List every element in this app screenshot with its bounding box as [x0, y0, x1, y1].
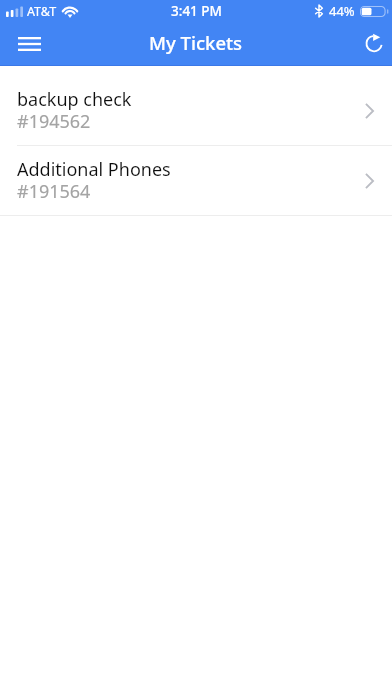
button[interactable]: Refresh	[348, 24, 392, 66]
button[interactable]: Additional Phones	[0, 146, 392, 215]
staticText: Additional Phones	[17, 157, 171, 182]
staticText: My Tickets	[149, 30, 243, 55]
staticText: 44%	[329, 2, 355, 20]
staticText: #191564	[17, 179, 91, 204]
staticText: AT&T	[27, 3, 57, 20]
button[interactable]: Open navigation menu	[7, 24, 51, 66]
staticText: #194562	[17, 109, 91, 134]
staticText: 3:41 PM	[171, 2, 222, 20]
staticText: backup check	[17, 87, 132, 112]
button[interactable]: backup check	[0, 76, 392, 145]
